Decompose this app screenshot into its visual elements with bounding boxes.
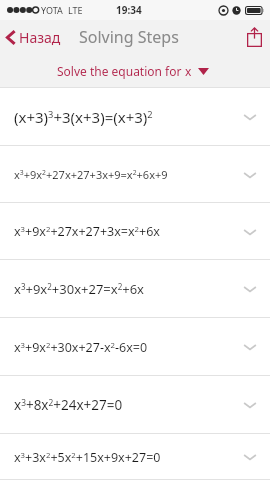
button[interactable]: x3+9x2+27x+27+3x+9=x2+6x+9 — [0, 146, 270, 203]
staticText: 19:34 — [116, 3, 142, 17]
staticText: x3+8x2+24x+27=0 — [14, 396, 123, 414]
staticText: Назад — [19, 28, 61, 47]
button[interactable]: x3+9x2+30x+27=x2+6x — [0, 260, 270, 318]
staticText: x3+9x2+27x+27+3x=x2+6x — [14, 223, 160, 240]
staticText: YOTA — [41, 4, 63, 16]
staticText: x3+9x2+30x+27=x2+6x — [14, 280, 144, 298]
button[interactable]: (x+3)3+3(x+3)=(x+3)2 — [0, 88, 270, 146]
staticText: x3+9x2+27x+27+3x+9=x2+6x+9 — [14, 167, 168, 182]
staticText: Solve the equation for — [57, 63, 185, 79]
button[interactable]: Назад — [0, 24, 69, 51]
button[interactable]: x3+9x2+30x+27-x2-6x=0 — [0, 318, 270, 376]
staticText: Solving Steps — [79, 26, 179, 48]
button[interactable]: x3+8x2+24x+27=0 — [0, 376, 270, 434]
staticText: x3+3x2+5x2+15x+9x+27=0 — [14, 449, 161, 466]
button[interactable]: Share — [239, 23, 270, 51]
staticText: (x+3)3+3(x+3)=(x+3)2 — [14, 107, 153, 127]
button[interactable]: Solve the equation for — [0, 54, 270, 88]
button[interactable]: x3+9x2+27x+27+3x=x2+6x — [0, 203, 270, 260]
staticText: x3+9x2+30x+27-x2-6x=0 — [14, 339, 148, 356]
button[interactable]: x3+3x2+5x2+15x+9x+27=0 — [0, 434, 270, 480]
staticText: x — [185, 63, 192, 79]
staticText: LTE — [68, 4, 83, 16]
